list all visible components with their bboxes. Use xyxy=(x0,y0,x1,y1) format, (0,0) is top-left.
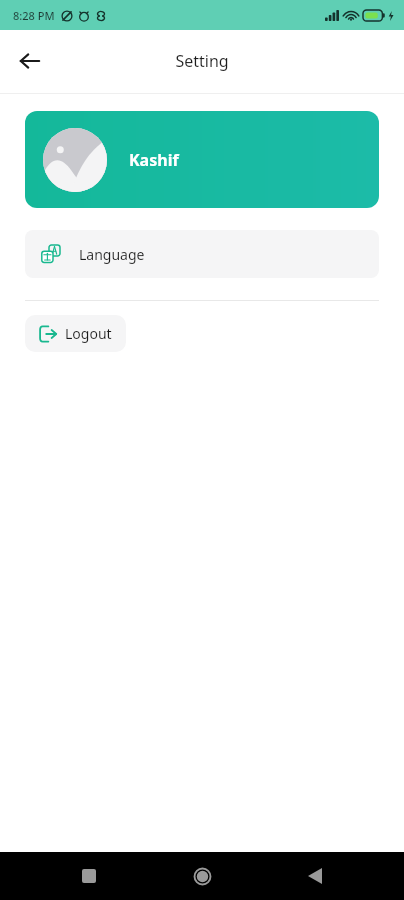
button[interactable]: Kashif xyxy=(25,111,379,208)
button[interactable]: Back xyxy=(8,39,52,83)
button[interactable]: Home xyxy=(178,852,226,900)
button[interactable]: Language xyxy=(25,230,379,278)
button[interactable]: Recent apps xyxy=(65,852,113,900)
staticText: Logout xyxy=(65,324,112,343)
button[interactable]: Logout xyxy=(25,315,126,352)
staticText: 8:28 PM xyxy=(13,8,55,23)
staticText: Language xyxy=(79,245,145,264)
button[interactable]: Back xyxy=(291,852,339,900)
staticText: Setting xyxy=(175,50,229,72)
staticText: Kashif xyxy=(129,149,179,171)
